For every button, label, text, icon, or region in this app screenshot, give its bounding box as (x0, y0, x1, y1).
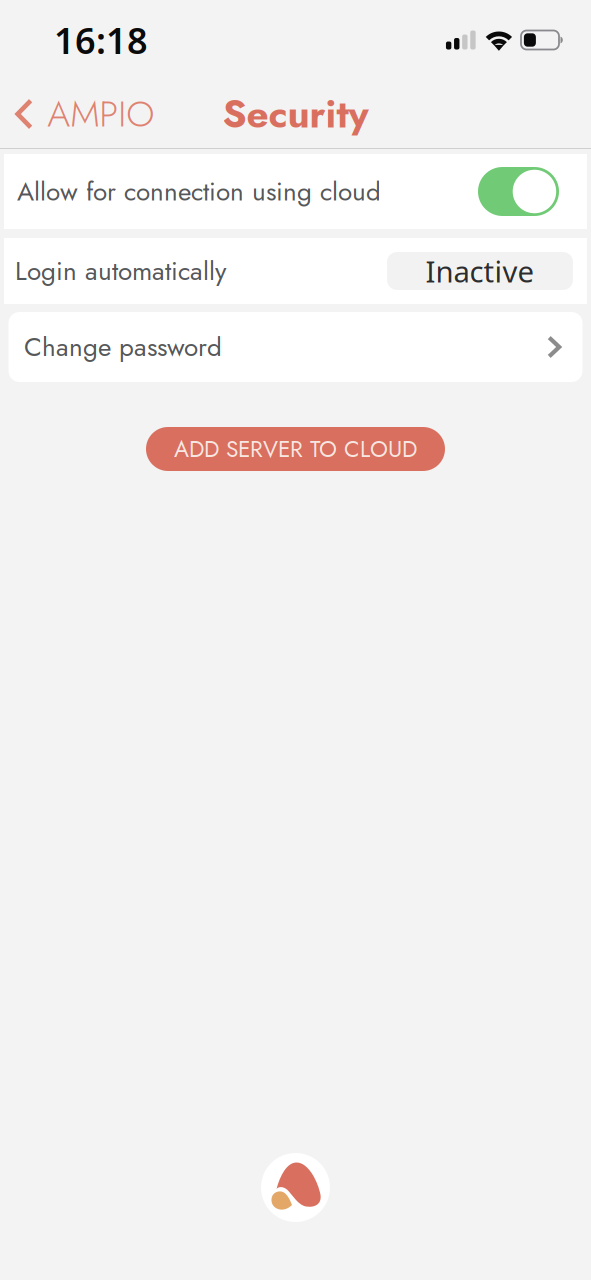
staticText: Security (222, 86, 368, 142)
staticText: ADD SERVER TO CLOUD (174, 433, 417, 465)
button[interactable]: AMPIO (0, 80, 280, 148)
staticText: 16:18 (54, 16, 148, 64)
button[interactable]: Login automatically (4, 238, 587, 304)
staticText: Login automatically (15, 252, 226, 290)
button[interactable]: ADD SERVER TO CLOUD (146, 427, 445, 471)
staticText: Change password (24, 328, 222, 366)
staticText: Inactive (425, 251, 534, 290)
button[interactable]: Allow for connection using cloud (478, 167, 559, 216)
button[interactable]: Change password (8, 312, 582, 382)
staticText: Allow for connection using cloud (17, 173, 381, 210)
staticText: AMPIO (47, 88, 154, 140)
